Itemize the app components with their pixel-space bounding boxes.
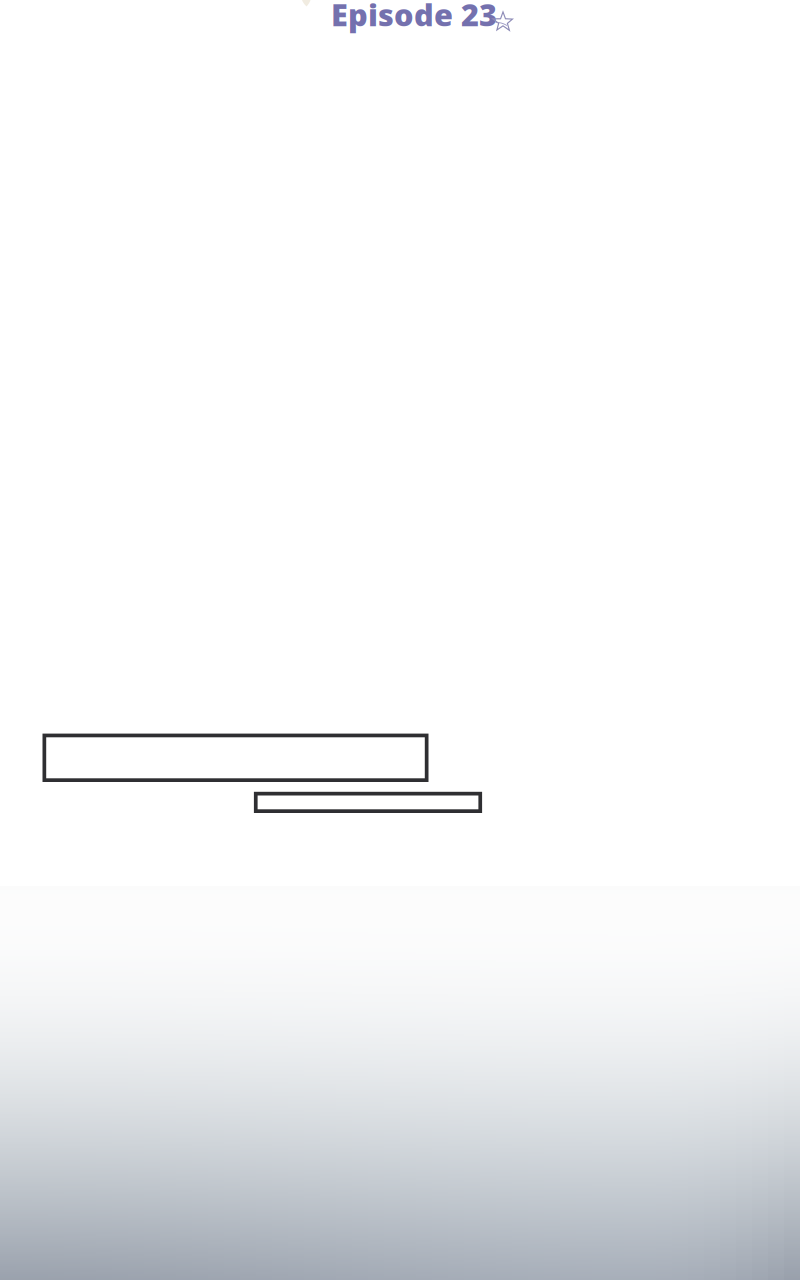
staticText: Episode 23 <box>331 0 497 35</box>
button[interactable]: Episode 23 <box>0 0 800 1280</box>
